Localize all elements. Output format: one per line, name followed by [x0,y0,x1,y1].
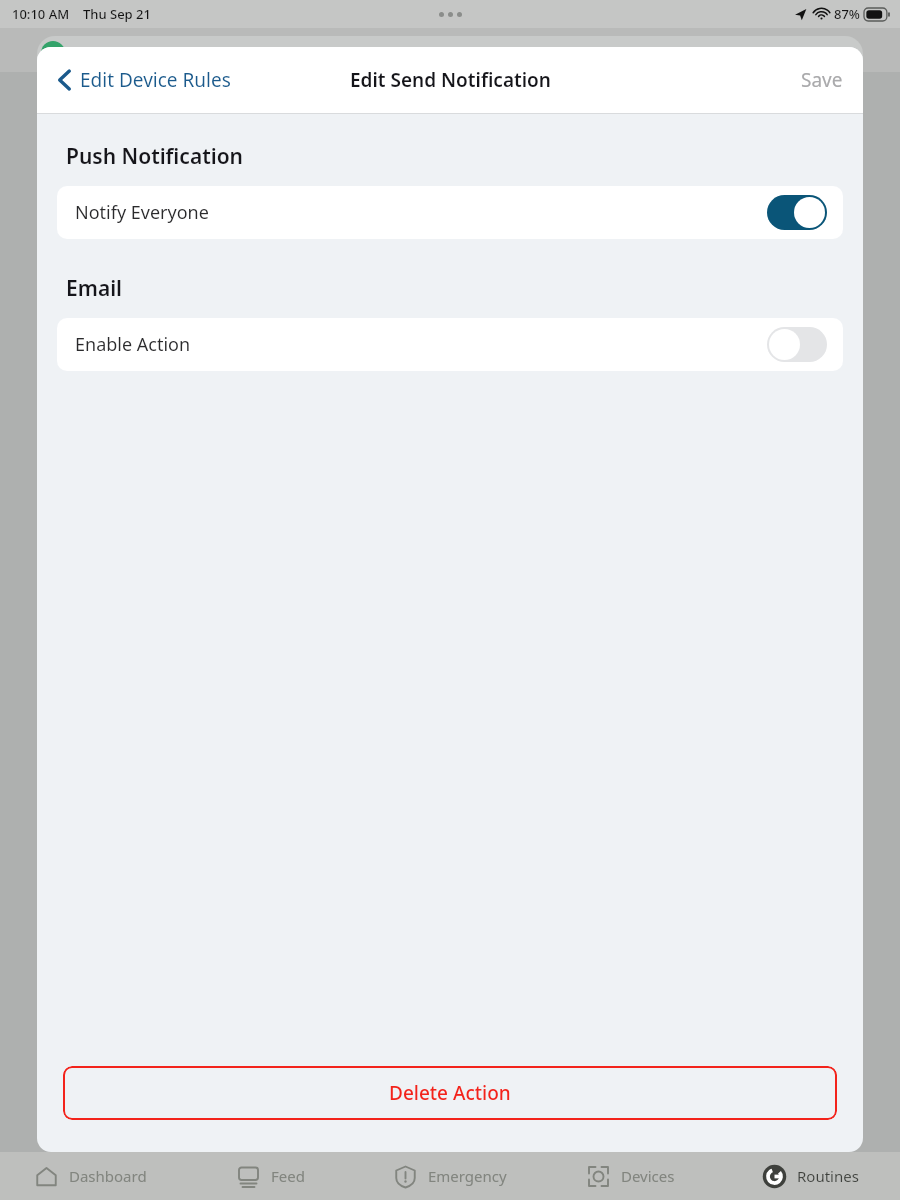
staticText: Enable Action [75,332,191,357]
button[interactable]: Dashboard [0,1152,180,1200]
button[interactable]: Save [795,61,849,99]
button[interactable]: Delete Action [63,1066,837,1120]
staticText: Edit Device Rules [80,67,231,93]
button[interactable]: Notify Everyone on [767,195,827,230]
staticText: Dashboard [69,1166,147,1186]
button[interactable]: Emergency [360,1152,540,1200]
staticText: Save [801,67,843,93]
button[interactable]: Enable Action off [767,327,827,362]
staticText: Push Notification [66,142,243,171]
button[interactable]: Devices [540,1152,720,1200]
button[interactable]: Routines [720,1152,900,1200]
staticText: Emergency [428,1166,507,1186]
button[interactable]: Feed [180,1152,360,1200]
staticText: 10:10 AM [12,5,70,23]
button[interactable]: Enable Action [57,318,843,371]
staticText: Notify Everyone [75,200,209,225]
staticText: Routines [797,1166,859,1186]
button[interactable]: Notify Everyone [57,186,843,239]
staticText: Edit Send Notification [350,67,551,93]
staticText: Delete Action [389,1080,511,1106]
staticText: Feed [271,1166,305,1186]
staticText: Devices [621,1166,675,1186]
staticText: Thu Sep 21 [83,5,151,23]
button[interactable]: Edit Device Rules [51,61,237,99]
staticText: Email [66,274,123,303]
staticText: 87% [834,5,860,23]
